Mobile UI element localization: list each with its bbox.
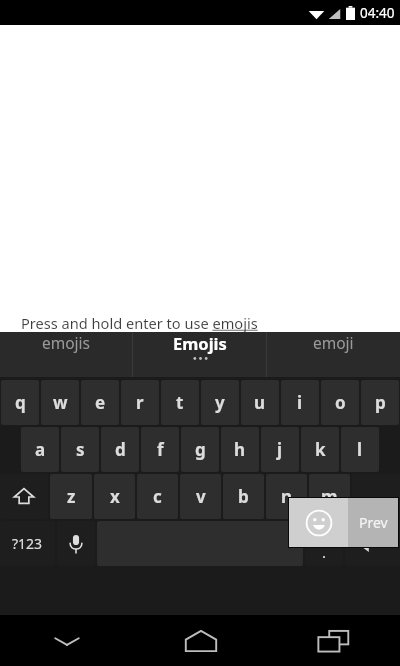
staticText: h [234, 438, 246, 461]
button[interactable]: x [94, 474, 135, 519]
staticText: emoji [313, 332, 354, 353]
staticText: k [315, 438, 326, 461]
staticText: m [321, 485, 338, 508]
staticText: z [67, 485, 76, 508]
staticText: . [322, 542, 327, 562]
staticText: 04:40 [360, 4, 395, 22]
staticText: d [115, 438, 126, 461]
staticText: o [335, 391, 346, 414]
button[interactable]: . [305, 521, 343, 566]
staticText: s [76, 438, 85, 461]
button[interactable]: t [161, 380, 199, 425]
staticText: q [15, 391, 26, 414]
staticText: Prev [359, 513, 388, 532]
button[interactable]: i [281, 380, 319, 425]
button[interactable]: q [1, 380, 39, 425]
button[interactable]: u [241, 380, 279, 425]
button[interactable]: emojis [0, 332, 132, 353]
staticText: v [196, 485, 206, 508]
button[interactable]: emoji [267, 332, 400, 353]
staticText: c [153, 485, 162, 508]
staticText: w [53, 391, 68, 414]
staticText: x [110, 485, 120, 508]
staticText: t [176, 391, 184, 414]
staticText: emojis [42, 332, 91, 353]
button[interactable]: p [361, 380, 399, 425]
staticText: Press and hold enter to use emojis [21, 313, 258, 333]
staticText: p [375, 391, 386, 414]
button[interactable]: o [321, 380, 359, 425]
button[interactable]: Emojis [133, 332, 266, 360]
button[interactable]: f [141, 427, 179, 472]
button[interactable]: r [121, 380, 159, 425]
staticText: g [195, 438, 206, 461]
button[interactable]: Home [134, 615, 267, 666]
staticText: l [357, 438, 363, 461]
button[interactable]: n [266, 474, 307, 519]
staticText: r [136, 391, 144, 414]
button[interactable]: Space [97, 521, 303, 566]
button[interactable]: Voice input [57, 521, 95, 566]
staticText: y [215, 391, 225, 414]
staticText: Emojis [173, 332, 227, 354]
button[interactable]: Recent apps [267, 615, 400, 666]
button[interactable]: Hide keyboard [0, 615, 134, 666]
button[interactable]: j [261, 427, 299, 472]
staticText: u [254, 391, 266, 414]
button[interactable]: s [61, 427, 99, 472]
staticText: b [238, 485, 249, 508]
button[interactable]: a [21, 427, 59, 472]
button[interactable]: Enter [345, 521, 400, 566]
button[interactable]: Delete [352, 474, 400, 519]
button[interactable]: ?123 [0, 521, 55, 566]
button[interactable]: v [180, 474, 221, 519]
staticText: j [277, 438, 283, 461]
button[interactable]: d [101, 427, 139, 472]
button[interactable]: k [301, 427, 339, 472]
button[interactable]: h [221, 427, 259, 472]
button[interactable]: b [223, 474, 264, 519]
button[interactable]: Shift [0, 474, 48, 519]
button[interactable]: y [201, 380, 239, 425]
staticText: e [95, 391, 106, 414]
button[interactable]: m [309, 474, 350, 519]
staticText: i [297, 391, 303, 414]
staticText: a [35, 438, 46, 461]
staticText: n [281, 485, 293, 508]
button[interactable]: g [181, 427, 219, 472]
button[interactable]: e [81, 380, 119, 425]
button[interactable]: z [50, 474, 92, 519]
staticText: ?123 [12, 534, 43, 553]
button[interactable]: w [41, 380, 79, 425]
button[interactable]: Prev [348, 498, 398, 547]
staticText: f [157, 438, 164, 461]
button[interactable]: Emoji [289, 498, 348, 547]
button[interactable]: c [137, 474, 178, 519]
button[interactable]: l [341, 427, 379, 472]
